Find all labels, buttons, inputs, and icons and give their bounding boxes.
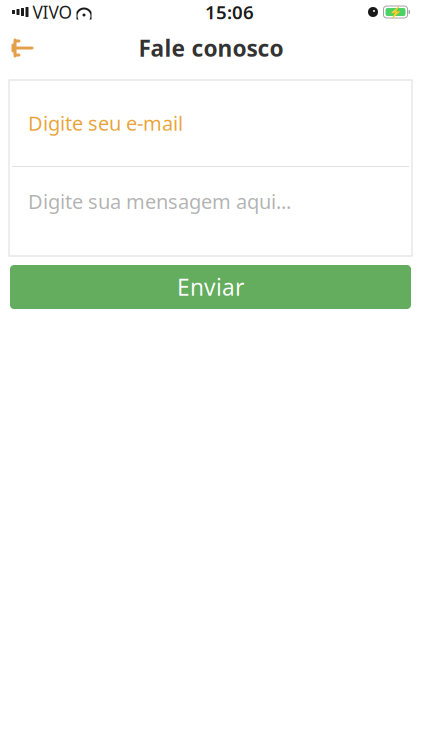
staticText: Enviar <box>177 272 244 302</box>
staticText: ⚡ <box>389 6 402 18</box>
button[interactable]: Voltar <box>0 28 44 68</box>
button[interactable]: Digite sua mensagem aqui... <box>9 167 412 256</box>
staticText: Fale conosco <box>138 33 283 63</box>
button[interactable]: Enviar <box>10 265 411 309</box>
staticText: 15:06 <box>205 0 254 24</box>
staticText: Digite sua mensagem aqui... <box>28 188 291 215</box>
button[interactable]: Digite seu e-mail <box>9 80 412 166</box>
staticText: VIVO <box>32 0 72 23</box>
staticText: Digite seu e-mail <box>28 110 183 136</box>
